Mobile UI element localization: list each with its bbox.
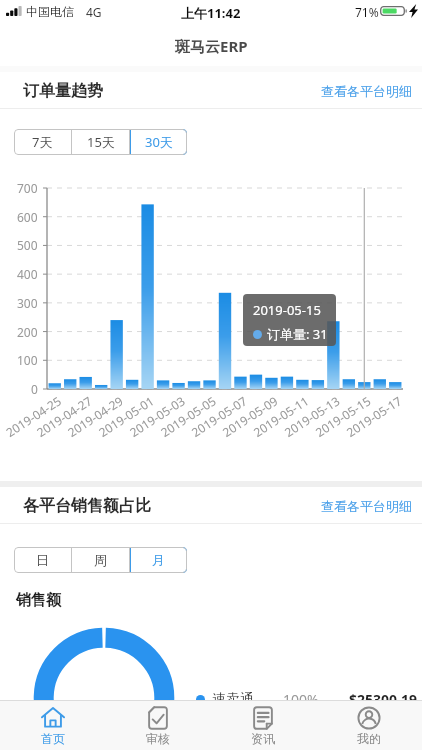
staticText: 速卖通 <box>212 691 254 709</box>
staticText: 月 <box>152 552 165 568</box>
button[interactable]: 查看各平台明细 <box>321 83 412 99</box>
button[interactable]: 周 <box>72 547 129 573</box>
staticText: 7天 <box>32 133 53 151</box>
staticText: 2019-05-15 <box>253 301 321 319</box>
staticText: 15天 <box>87 133 115 151</box>
staticText: 资讯 <box>251 731 275 746</box>
staticText: 30天 <box>145 133 173 151</box>
button[interactable]: 月 <box>130 547 187 573</box>
staticText: 71% <box>355 4 379 20</box>
staticText: 斑马云ERP <box>175 36 248 56</box>
button[interactable]: 30天 <box>130 129 187 155</box>
staticText: 订单量: 31 <box>267 325 328 343</box>
staticText: 我的 <box>357 731 381 746</box>
staticText: 审核 <box>146 731 170 746</box>
button[interactable]: 资讯 <box>210 701 316 750</box>
staticText: 周 <box>94 552 107 568</box>
staticText: 上午11:42 <box>181 4 241 22</box>
button[interactable]: 我的 <box>316 701 422 750</box>
staticText: 订单量趋势 <box>23 81 103 101</box>
staticText: 100% <box>283 690 319 709</box>
staticText: 日 <box>36 552 49 568</box>
staticText: 查看各平台明细 <box>321 83 412 99</box>
staticText: 销售额 <box>16 591 61 610</box>
button[interactable]: 15天 <box>72 129 129 155</box>
button[interactable]: 首页 <box>0 701 105 750</box>
button[interactable]: 查看各平台明细 <box>321 498 412 514</box>
button[interactable]: 7天 <box>14 129 71 155</box>
staticText: $25300.19 <box>349 690 417 709</box>
button[interactable]: 审核 <box>105 701 210 750</box>
staticText: 各平台销售额占比 <box>23 496 151 516</box>
staticText: 4G <box>86 4 102 20</box>
button[interactable]: 日 <box>14 547 71 573</box>
staticText: 首页 <box>41 731 65 746</box>
staticText: 查看各平台明细 <box>321 498 412 514</box>
staticText: 中国电信 <box>26 4 74 19</box>
